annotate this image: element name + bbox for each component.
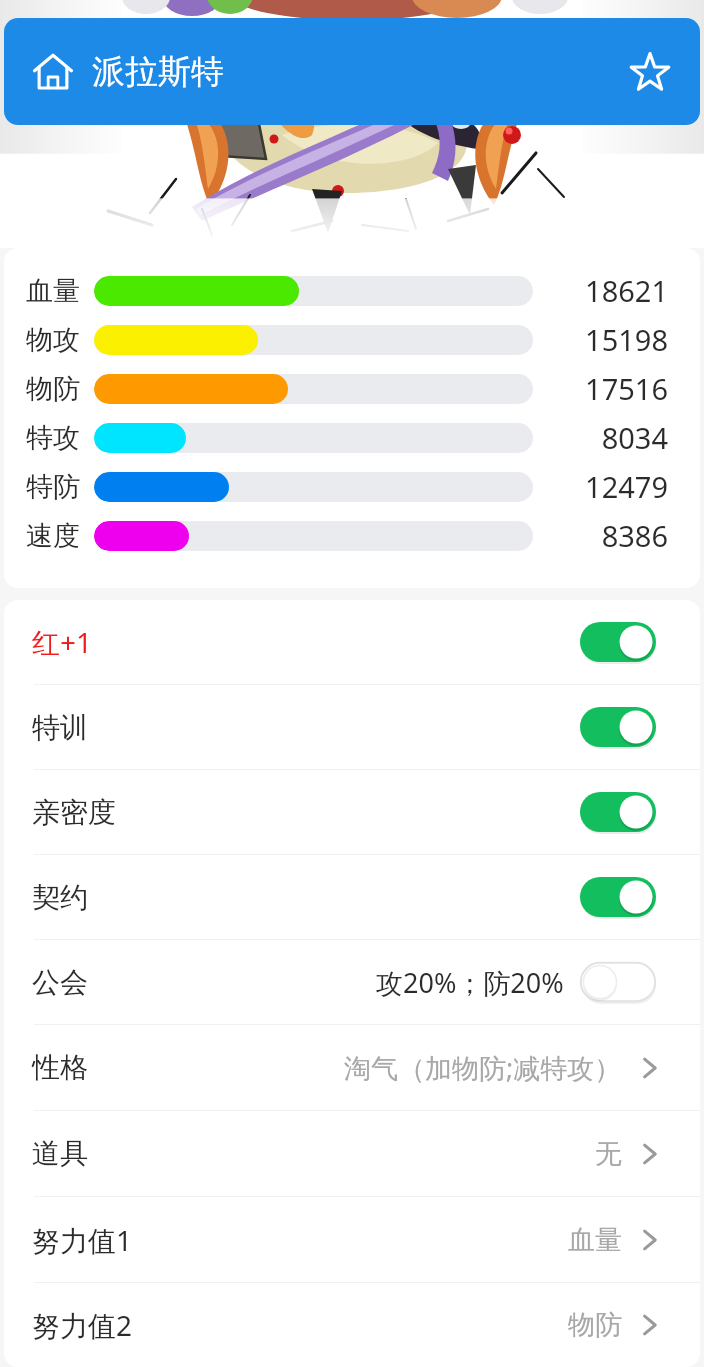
staticText: 血量: [26, 274, 80, 308]
staticText: 8034: [601, 418, 668, 457]
staticText: 8386: [601, 516, 668, 555]
button[interactable]: 性格: [4, 1025, 700, 1110]
staticText: 物防: [568, 1308, 622, 1342]
button[interactable]: Home: [26, 45, 80, 99]
staticText: 公会: [32, 965, 88, 1000]
staticText: 物攻: [26, 323, 80, 357]
button[interactable]: 公会: [4, 940, 700, 1024]
staticText: 速度: [26, 519, 80, 553]
staticText: 18621: [585, 271, 668, 310]
button[interactable]: 努力值1: [4, 1197, 700, 1282]
staticText: 血量: [568, 1223, 622, 1257]
staticText: 道具: [32, 1136, 88, 1171]
staticText: 淘气（加物防;减特攻）: [344, 1049, 622, 1086]
staticText: 努力值1: [32, 1221, 133, 1259]
staticText: 15198: [585, 320, 668, 359]
staticText: 12479: [585, 467, 668, 506]
staticText: 契约: [32, 880, 88, 915]
staticText: 亲密度: [32, 795, 116, 830]
staticText: 派拉斯特: [92, 51, 224, 93]
staticText: 特训: [32, 710, 88, 745]
button[interactable]: 特训: [4, 685, 700, 769]
staticText: 特防: [26, 470, 80, 504]
staticText: 性格: [32, 1050, 88, 1085]
staticText: 红+1: [32, 623, 93, 661]
staticText: 努力值2: [32, 1306, 133, 1344]
staticText: 17516: [585, 369, 668, 408]
staticText: 物防: [26, 372, 80, 406]
button[interactable]: 努力值2: [4, 1283, 700, 1367]
button[interactable]: Favorite: [622, 44, 678, 100]
staticText: 攻20%；防20%: [376, 964, 564, 1001]
button[interactable]: 契约: [4, 855, 700, 939]
button[interactable]: 红+1: [4, 600, 700, 684]
button[interactable]: 亲密度: [4, 770, 700, 854]
staticText: 无: [595, 1137, 622, 1171]
staticText: 特攻: [26, 421, 80, 455]
button[interactable]: 道具: [4, 1111, 700, 1196]
